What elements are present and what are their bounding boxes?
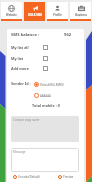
button[interactable]: Message	[11, 148, 79, 172]
button[interactable]: BULK SMS	[24, 2, 45, 21]
staticText: My list	[11, 56, 24, 61]
staticText: Unicode(Default)	[18, 175, 41, 179]
staticText: My list all	[11, 45, 29, 50]
staticText: Profile	[53, 13, 62, 17]
button[interactable]: Contact copy saver	[11, 116, 79, 142]
button[interactable]: Default(BULKMES)	[34, 82, 64, 87]
staticText: 962	[64, 32, 72, 38]
button[interactable]: Unicode(Default)	[13, 175, 41, 179]
staticText: SMS balance :	[11, 32, 40, 38]
button[interactable]: Business	[70, 2, 91, 21]
staticText: Add more	[11, 66, 29, 71]
staticText: Business	[75, 13, 87, 17]
button[interactable]: AAAAAA	[34, 93, 51, 98]
button[interactable]: Profile	[47, 2, 68, 21]
staticText: Message	[13, 150, 26, 154]
staticText: Preview	[63, 175, 74, 179]
staticText: Contact copy saver	[13, 118, 40, 122]
button[interactable]: Preview	[58, 175, 74, 179]
staticText: AAAAAA	[40, 94, 51, 98]
staticText: Default(BULKMES)	[40, 83, 64, 87]
staticText: BULK SMS	[28, 13, 42, 17]
button[interactable]: My list all	[11, 43, 80, 51]
button[interactable]: Add more	[11, 64, 80, 72]
staticText: Total mobile : 0	[32, 103, 60, 108]
button[interactable]: Website	[1, 2, 22, 21]
staticText: Website	[6, 13, 17, 17]
button[interactable]: My list	[11, 54, 80, 62]
staticText: Sender Id :	[11, 81, 31, 86]
